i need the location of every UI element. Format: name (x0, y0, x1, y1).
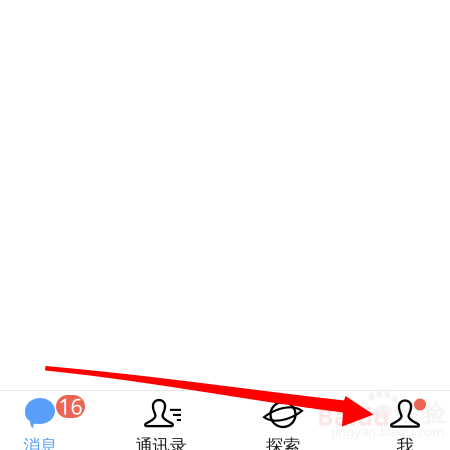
staticText: 我 (396, 435, 413, 450)
staticText: 探索 (266, 435, 300, 450)
staticText: 16 (58, 392, 82, 421)
staticText: 通讯录 (135, 435, 186, 450)
staticText: 消息 (23, 435, 57, 450)
staticText: 经验 (395, 397, 445, 428)
staticText: jingyan.baidu.com (332, 422, 444, 440)
staticText: Baidu (317, 399, 389, 433)
